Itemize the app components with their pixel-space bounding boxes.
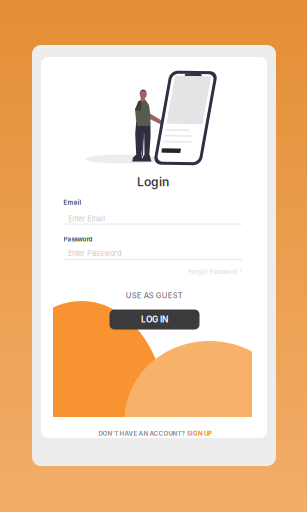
staticText: Forgot Password ? xyxy=(188,268,242,275)
staticText: Enter Email xyxy=(68,214,105,223)
staticText: DON'T HAVE AN ACCOUNT? xyxy=(98,430,184,437)
staticText: LOG IN xyxy=(141,314,168,325)
staticText: SIGN UP xyxy=(187,430,212,437)
staticText: Login xyxy=(137,175,169,189)
button[interactable]: DON'T HAVE AN ACCOUNT? xyxy=(98,428,212,438)
staticText: Enter Password xyxy=(68,249,121,258)
staticText: Password xyxy=(64,236,93,243)
button[interactable]: LOG IN xyxy=(109,309,199,329)
staticText: Email xyxy=(63,199,81,206)
button[interactable]: USE AS GUEST xyxy=(109,291,199,301)
button[interactable]: Forgot Password ? xyxy=(158,267,242,277)
staticText: USE AS GUEST xyxy=(126,291,183,300)
